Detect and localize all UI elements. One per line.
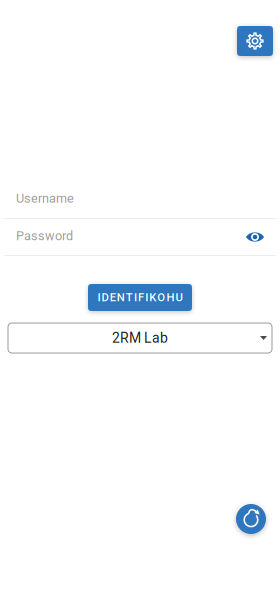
button[interactable]: Refresh (236, 504, 266, 534)
staticText: Username (16, 191, 74, 206)
button[interactable]: IDENTIFIKOHU (88, 284, 192, 311)
button[interactable]: 2RM Lab (8, 323, 272, 353)
staticText: IDENTIFIKOHU (97, 291, 183, 304)
staticText: Password (16, 229, 73, 243)
staticText: 2RM Lab (112, 330, 168, 346)
button[interactable]: Show password (240, 225, 270, 249)
button[interactable]: Settings (237, 26, 273, 56)
